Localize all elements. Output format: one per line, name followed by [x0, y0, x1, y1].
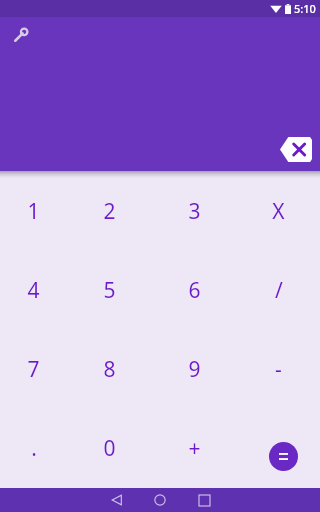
button[interactable]: + [152, 409, 237, 488]
button[interactable]: Equals [237, 409, 320, 488]
staticText: . [31, 434, 37, 463]
button[interactable]: 8 [67, 330, 152, 409]
staticText: 5:10 [294, 1, 316, 16]
staticText: 9 [188, 355, 201, 384]
button[interactable]: - [237, 330, 320, 409]
button[interactable]: Backspace [274, 128, 318, 171]
button[interactable]: 4 [0, 251, 67, 330]
staticText: 8 [103, 355, 116, 384]
button[interactable]: 6 [152, 251, 237, 330]
button[interactable]: 1 [0, 171, 67, 251]
staticText: + [188, 434, 201, 463]
staticText: - [275, 355, 282, 384]
button[interactable]: 7 [0, 330, 67, 409]
button[interactable]: . [0, 409, 67, 488]
button[interactable]: 9 [152, 330, 237, 409]
staticText: 1 [27, 197, 40, 226]
staticText: X [272, 197, 285, 226]
button[interactable]: Recent apps [185, 488, 223, 512]
staticText: 7 [27, 355, 40, 384]
button[interactable]: X [237, 171, 320, 251]
button[interactable]: 5 [67, 251, 152, 330]
button[interactable]: Home [141, 488, 179, 512]
button[interactable]: Back [98, 488, 136, 512]
staticText: 3 [188, 197, 201, 226]
staticText: 6 [188, 276, 201, 305]
button[interactable]: 2 [67, 171, 152, 251]
staticText: 4 [27, 276, 40, 305]
button[interactable]: 0 [67, 409, 152, 488]
staticText: 0 [103, 434, 116, 463]
staticText: / [275, 276, 283, 305]
staticText: 2 [103, 197, 116, 226]
button[interactable]: 3 [152, 171, 237, 251]
button[interactable]: Settings [5, 20, 35, 50]
button[interactable]: / [237, 251, 320, 330]
staticText: 5 [103, 276, 116, 305]
